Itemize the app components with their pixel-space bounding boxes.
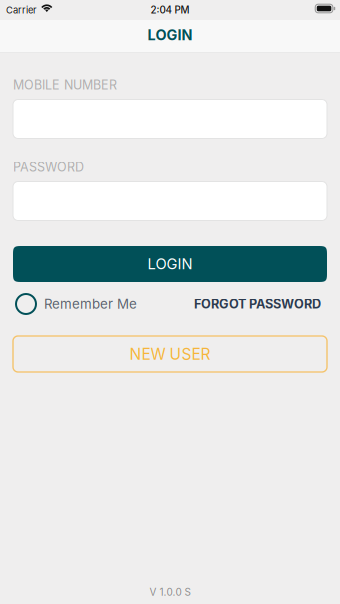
staticText: LOGIN bbox=[147, 255, 192, 273]
button[interactable]: NEW USER bbox=[13, 336, 327, 372]
button[interactable]: LOGIN bbox=[13, 246, 327, 282]
staticText: 2:04 PM bbox=[150, 4, 189, 16]
button[interactable]: Remember Me bbox=[16, 294, 140, 314]
button[interactable]: FORGOT PASSWORD bbox=[190, 294, 327, 314]
staticText: NEW USER bbox=[129, 345, 210, 363]
staticText: FORGOT PASSWORD bbox=[194, 296, 321, 312]
staticText: PASSWORD bbox=[13, 159, 84, 175]
staticText: V 1.0.0 S bbox=[149, 586, 190, 598]
staticText: Remember Me bbox=[44, 296, 137, 312]
staticText: LOGIN bbox=[147, 26, 192, 44]
staticText: MOBILE NUMBER bbox=[13, 77, 117, 93]
staticText: Carrier bbox=[6, 4, 37, 16]
